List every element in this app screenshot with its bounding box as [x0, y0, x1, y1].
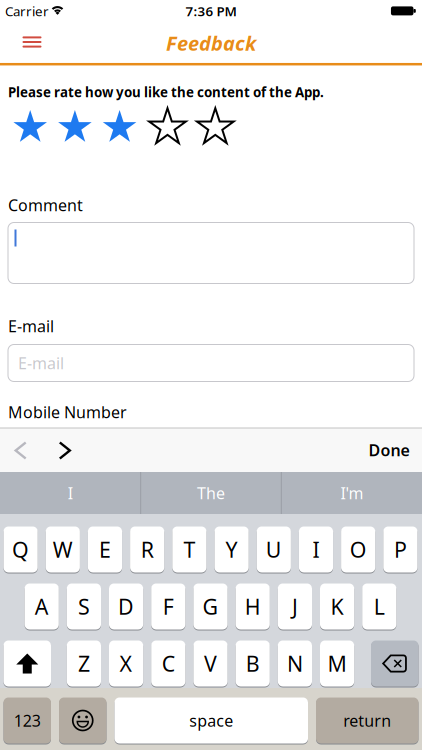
staticText: Done: [368, 439, 409, 461]
staticText: Y: [226, 535, 238, 564]
staticText: G: [202, 592, 218, 621]
staticText: N: [287, 649, 303, 678]
button[interactable]: Q: [3, 526, 38, 572]
staticText: J: [292, 592, 298, 621]
staticText: S: [78, 592, 90, 621]
staticText: E-mail: [18, 352, 64, 374]
button[interactable]: H: [236, 583, 270, 629]
button[interactable]: V: [193, 640, 228, 686]
staticText: Feedback: [166, 30, 256, 56]
button[interactable]: T: [172, 526, 206, 572]
staticText: P: [394, 535, 407, 564]
button[interactable]: Numbers: [3, 697, 51, 743]
staticText: E-mail: [8, 315, 54, 337]
staticText: C: [162, 649, 175, 678]
button[interactable]: M: [320, 640, 354, 686]
staticText: Please rate how you like the content of …: [8, 83, 324, 101]
button[interactable]: Y: [214, 526, 249, 572]
staticText: D: [118, 592, 134, 621]
button[interactable]: The: [146, 472, 276, 514]
button[interactable]: Star 2: [56, 109, 94, 147]
button[interactable]: L: [362, 583, 396, 629]
staticText: B: [246, 649, 260, 678]
staticText: Q: [12, 535, 29, 564]
staticText: I: [68, 482, 73, 504]
staticText: Mobile Number: [8, 401, 127, 423]
button[interactable]: I: [299, 526, 333, 572]
button[interactable]: Star 1: [11, 109, 49, 147]
button[interactable]: Z: [67, 640, 101, 686]
staticText: I: [312, 535, 319, 564]
staticText: R: [141, 535, 154, 564]
staticText: space: [189, 710, 233, 731]
staticText: K: [331, 592, 344, 621]
button[interactable]: E: [88, 526, 122, 572]
staticText: Z: [78, 649, 90, 678]
staticText: 7:36 PM: [185, 2, 236, 20]
staticText: L: [374, 592, 385, 621]
button[interactable]: Done: [368, 439, 409, 461]
button[interactable]: W: [46, 526, 80, 572]
staticText: T: [183, 535, 195, 564]
button[interactable]: P: [383, 526, 417, 572]
button[interactable]: O: [341, 526, 375, 572]
button[interactable]: D: [109, 583, 143, 629]
button[interactable]: C: [151, 640, 185, 686]
button[interactable]: Delete: [371, 640, 418, 686]
button[interactable]: space: [114, 697, 308, 743]
button[interactable]: Shift: [3, 640, 51, 686]
staticText: 123: [14, 710, 41, 731]
staticText: Comment: [8, 194, 83, 216]
button[interactable]: N: [278, 640, 312, 686]
button[interactable]: S: [67, 583, 101, 629]
staticText: U: [266, 535, 282, 564]
button[interactable]: R: [130, 526, 164, 572]
staticText: X: [120, 649, 133, 678]
staticText: A: [35, 592, 49, 621]
button[interactable]: F: [151, 583, 185, 629]
staticText: F: [163, 592, 174, 621]
button[interactable]: K: [320, 583, 354, 629]
button[interactable]: return: [316, 697, 418, 743]
button[interactable]: B: [236, 640, 270, 686]
button[interactable]: Menu: [14, 24, 50, 60]
button[interactable]: Star 4: [147, 107, 187, 147]
staticText: O: [350, 535, 367, 564]
button[interactable]: Emoji: [59, 697, 106, 743]
staticText: I'm: [340, 482, 363, 504]
button[interactable]: J: [278, 583, 312, 629]
staticText: The: [197, 482, 225, 504]
staticText: W: [53, 535, 73, 564]
button[interactable]: Previous field: [14, 441, 27, 459]
staticText: Carrier: [5, 2, 49, 20]
staticText: H: [245, 592, 261, 621]
button[interactable]: G: [193, 583, 228, 629]
staticText: E: [99, 535, 111, 564]
button[interactable]: Star 3: [101, 109, 139, 147]
button[interactable]: Star 5: [195, 107, 235, 147]
button[interactable]: A: [25, 583, 59, 629]
button[interactable]: I: [5, 472, 135, 514]
staticText: M: [328, 649, 347, 678]
button[interactable]: U: [257, 526, 291, 572]
staticText: return: [343, 710, 391, 731]
staticText: V: [204, 649, 217, 678]
button[interactable]: X: [109, 640, 143, 686]
button[interactable]: I'm: [287, 472, 417, 514]
button[interactable]: Next field: [58, 441, 71, 459]
